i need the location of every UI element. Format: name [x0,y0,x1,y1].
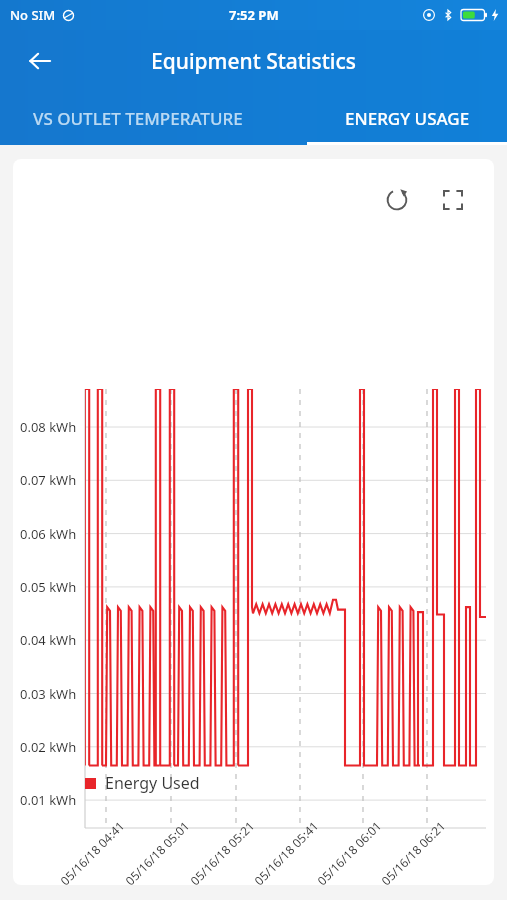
staticText: No SIM [10,6,56,24]
button[interactable]: Back [18,39,62,83]
button[interactable]: Refresh [380,183,414,217]
button[interactable]: Fullscreen [436,183,470,217]
staticText: ENERGY USAGE [345,107,470,130]
staticText: Equipment Statistics [151,47,356,76]
staticText: 05/16/18 05:21 [187,818,257,885]
staticText: 0.01 kWh [20,791,77,809]
staticText: 0.03 kWh [20,685,77,703]
staticText: 0.05 kWh [20,578,77,596]
staticText: 0.08 kWh [20,418,77,436]
staticText: 05/16/18 04:41 [57,818,127,885]
staticText: 7:52 PM [229,6,279,24]
staticText: VS OUTLET TEMPERATURE [33,107,243,130]
staticText: 05/16/18 06:01 [314,818,384,885]
staticText: Energy Used [105,772,200,794]
button[interactable]: ENERGY USAGE [307,92,507,145]
staticText: 05/16/18 05:41 [251,818,321,885]
button[interactable]: VS OUTLET TEMPERATURE [0,92,288,145]
staticText: 05/16/18 05:01 [122,818,192,885]
staticText: 0.04 kWh [20,631,77,649]
staticText: 0.02 kWh [20,738,77,756]
staticText: 0.07 kWh [20,471,77,489]
staticText: 05/16/18 06:21 [378,818,448,885]
staticText: 0.06 kWh [20,525,77,543]
